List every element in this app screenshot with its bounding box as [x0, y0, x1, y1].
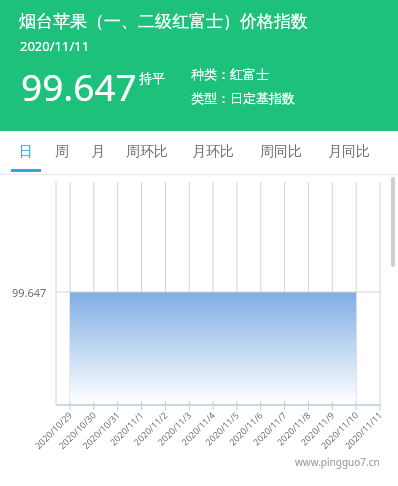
staticText: 99.647 [21, 61, 137, 111]
staticText: 月同比 [328, 143, 370, 161]
button[interactable]: 周环比 [116, 131, 178, 175]
button[interactable]: 日 [10, 131, 42, 175]
staticText: 周同比 [260, 143, 302, 161]
staticText: 周 [55, 143, 69, 161]
button[interactable]: 月 [82, 131, 114, 175]
button[interactable]: 月环比 [182, 131, 244, 175]
staticText: 2020/11/11 [20, 37, 90, 55]
button[interactable]: 月同比 [318, 131, 380, 175]
staticText: 月 [91, 143, 105, 161]
staticText: 持平 [139, 70, 165, 86]
staticText: 烟台苹果（一、二级红富士）价格指数 [19, 11, 308, 32]
button[interactable]: 周同比 [250, 131, 312, 175]
staticText: 周环比 [126, 143, 168, 161]
staticText: 日 [19, 143, 33, 161]
button[interactable]: 周 [46, 131, 78, 175]
staticText: 类型：日定基指数 [191, 90, 295, 106]
staticText: 种类：红富士 [191, 66, 269, 82]
staticText: 月环比 [192, 143, 234, 161]
